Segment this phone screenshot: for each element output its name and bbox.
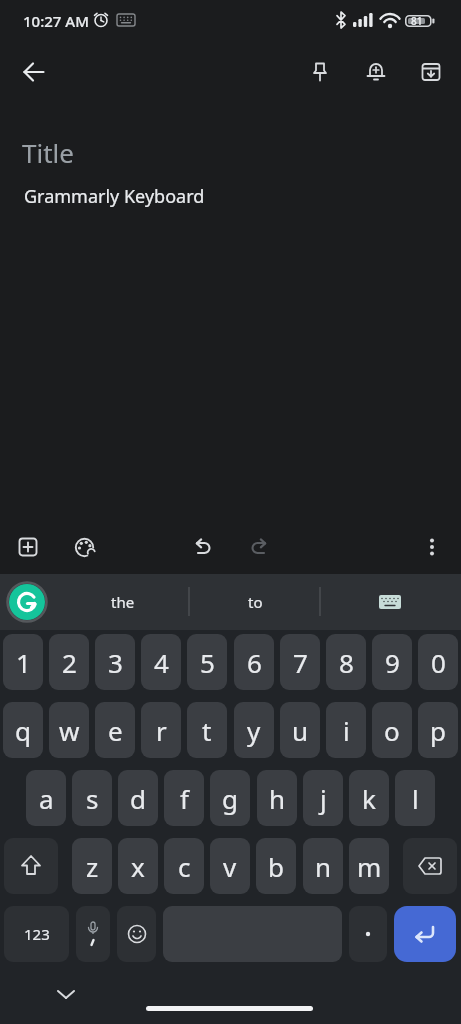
button[interactable]: i (326, 702, 366, 758)
button[interactable]: z (72, 838, 112, 894)
button[interactable]: 7 (280, 634, 320, 690)
staticText: h (269, 781, 286, 816)
staticText: 7 (293, 645, 308, 680)
staticText: v (223, 849, 237, 884)
staticText: 1 (16, 645, 31, 680)
staticText: z (86, 849, 99, 884)
button[interactable] (4, 838, 58, 894)
button[interactable]: v (210, 838, 250, 894)
button[interactable]: 8 (326, 634, 366, 690)
staticText: w (59, 713, 80, 748)
button[interactable]: a (26, 770, 66, 826)
button[interactable]: h (257, 770, 297, 826)
button[interactable]: o (372, 702, 412, 758)
staticText: y (247, 713, 261, 748)
button[interactable]: j (303, 770, 343, 826)
button[interactable] (44, 979, 88, 1009)
button[interactable]: t (187, 702, 227, 758)
staticText: x (131, 849, 145, 884)
button[interactable]: p (418, 702, 458, 758)
button[interactable]: 9 (372, 634, 412, 690)
button[interactable] (117, 906, 156, 962)
staticText: 10:27 AM (23, 11, 89, 31)
staticText: 3 (108, 645, 123, 680)
staticText: p (430, 713, 446, 748)
staticText: 4 (154, 645, 169, 680)
staticText: c (178, 849, 191, 884)
button[interactable]: 0 (418, 634, 458, 690)
staticText: 8 (339, 645, 354, 680)
button[interactable]: to (196, 574, 314, 630)
button[interactable] (349, 906, 387, 962)
staticText: g (222, 781, 238, 816)
staticText: 2 (62, 645, 77, 680)
button[interactable] (354, 50, 398, 94)
staticText: o (384, 713, 400, 748)
button[interactable] (394, 906, 456, 962)
button[interactable]: e (95, 702, 135, 758)
staticText: n (315, 849, 332, 884)
button[interactable]: 2 (49, 634, 89, 690)
button[interactable]: 5 (187, 634, 227, 690)
button[interactable]: 3 (95, 634, 135, 690)
button[interactable]: g (210, 770, 250, 826)
button[interactable] (12, 50, 56, 94)
staticText: b (268, 849, 284, 884)
staticText: k (362, 781, 376, 816)
staticText: s (86, 781, 99, 816)
staticText: 5 (200, 645, 215, 680)
staticText: e (108, 713, 123, 748)
button[interactable]: r (141, 702, 181, 758)
staticText: 9 (385, 645, 400, 680)
button[interactable]: s (72, 770, 112, 826)
staticText: t (202, 713, 212, 748)
button[interactable]: 4 (141, 634, 181, 690)
button[interactable]: x (118, 838, 158, 894)
button[interactable] (410, 525, 454, 569)
button[interactable] (409, 50, 453, 94)
button[interactable]: u (280, 702, 320, 758)
button[interactable]: c (164, 838, 204, 894)
button[interactable]: d (118, 770, 158, 826)
button[interactable] (62, 525, 106, 569)
staticText: l (412, 781, 419, 816)
button[interactable]: m (349, 838, 389, 894)
button[interactable] (6, 525, 50, 569)
button[interactable] (5, 580, 49, 624)
staticText: the (111, 592, 135, 612)
button[interactable]: y (234, 702, 274, 758)
button[interactable]: f (164, 770, 204, 826)
staticText: f (180, 781, 189, 816)
button[interactable] (76, 906, 110, 962)
button[interactable]: k (349, 770, 389, 826)
staticText: j (320, 781, 327, 816)
button[interactable] (298, 50, 342, 94)
button[interactable]: n (303, 838, 343, 894)
staticText: 0 (431, 645, 446, 680)
button[interactable]: the (64, 574, 182, 630)
button[interactable] (403, 838, 457, 894)
staticText: 81 (411, 14, 423, 28)
staticText: d (130, 781, 146, 816)
button[interactable] (237, 525, 281, 569)
button[interactable]: 6 (234, 634, 274, 690)
button[interactable]: w (49, 702, 89, 758)
staticText: i (343, 713, 350, 748)
button[interactable] (181, 525, 225, 569)
staticText: r (156, 713, 167, 748)
staticText: a (39, 781, 54, 816)
staticText: m (357, 849, 382, 884)
button[interactable] (345, 574, 435, 630)
staticText: 123 (24, 924, 50, 944)
button[interactable]: q (3, 702, 43, 758)
button[interactable]: b (256, 838, 296, 894)
staticText: 6 (247, 645, 262, 680)
button[interactable]: l (395, 770, 435, 826)
button[interactable]: 123 (4, 906, 69, 962)
staticText: q (15, 713, 31, 748)
staticText: u (292, 713, 309, 748)
staticText: to (248, 592, 263, 612)
staticText: Grammarly Keyboard (24, 184, 205, 209)
button[interactable]: 1 (3, 634, 43, 690)
